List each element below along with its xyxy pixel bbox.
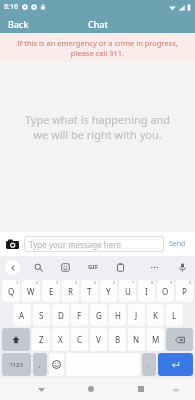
button[interactable]: Back [32, 380, 50, 398]
staticText: E [49, 286, 54, 297]
button[interactable]: . [142, 353, 156, 376]
staticText: R [68, 286, 73, 297]
button[interactable]: Backspace [166, 328, 193, 351]
button[interactable]: A [13, 304, 31, 326]
button[interactable]: GIF [85, 260, 101, 274]
staticText: Chat [88, 18, 108, 30]
button[interactable]: D [52, 304, 69, 326]
button[interactable]: More options [147, 260, 162, 275]
button[interactable]: S [33, 304, 50, 326]
button[interactable]: Stickers [58, 260, 73, 275]
staticText: 5 [94, 280, 97, 285]
button[interactable]: Z [32, 328, 50, 351]
button[interactable]: Recents [132, 380, 150, 398]
staticText: Q [8, 286, 15, 297]
staticText: 7 [132, 280, 135, 285]
staticText: GIF [88, 263, 98, 271]
button[interactable]: P [176, 280, 193, 302]
staticText: 6 [113, 280, 116, 285]
button[interactable]: ?123 [2, 353, 31, 376]
button[interactable]: Search [31, 260, 46, 275]
button[interactable]: Collapse [5, 260, 20, 275]
button[interactable]: Take photo [4, 236, 21, 253]
staticText: S [39, 310, 44, 321]
staticText: Back [8, 18, 29, 30]
button[interactable]: I [138, 280, 155, 302]
button[interactable]: W [22, 280, 40, 302]
button[interactable]: G [90, 304, 107, 326]
button[interactable]: E [42, 280, 60, 302]
staticText: X [58, 334, 63, 345]
button[interactable]: Y [100, 280, 117, 302]
button[interactable]: B [109, 328, 126, 351]
button[interactable]: J [128, 304, 145, 326]
staticText: Type what is happening and we will be ri… [22, 112, 173, 142]
staticText: 0 [189, 280, 192, 285]
button[interactable]: L [166, 304, 183, 326]
button[interactable]: F [71, 304, 88, 326]
button[interactable]: H [109, 304, 126, 326]
staticText: D [58, 310, 64, 321]
staticText: 4 [75, 280, 78, 285]
staticText: Send [169, 239, 186, 249]
staticText: If this is an emergency or a crime in pr… [9, 38, 186, 58]
staticText: T [87, 286, 92, 297]
staticText: 1 [16, 280, 19, 285]
staticText: , [39, 360, 41, 370]
staticText: O [162, 286, 169, 297]
button[interactable]: Send [164, 235, 191, 253]
staticText: N [133, 334, 140, 345]
button[interactable]: K [147, 304, 164, 326]
button[interactable]: Type your message here [24, 236, 164, 252]
button[interactable]: Home [82, 380, 100, 398]
staticText: A [19, 310, 25, 321]
staticText: 8:16 [4, 2, 18, 12]
staticText: W [27, 286, 35, 297]
staticText: M [152, 334, 160, 345]
staticText: K [153, 310, 158, 321]
button[interactable]: T [81, 280, 98, 302]
button[interactable]: Enter [158, 353, 193, 376]
staticText: C [77, 334, 83, 345]
button[interactable]: C [71, 328, 88, 351]
staticText: F [77, 310, 82, 321]
staticText: ?123 [10, 361, 23, 369]
staticText: Type your message here [29, 239, 121, 250]
staticText: I [145, 286, 148, 297]
staticText: J [135, 310, 138, 321]
staticText: V [96, 334, 101, 345]
button[interactable]: X [52, 328, 69, 351]
staticText: 9 [170, 280, 173, 285]
staticText: 3 [56, 280, 59, 285]
button[interactable]: O [157, 280, 174, 302]
staticText: P [182, 286, 187, 297]
staticText: B [115, 334, 121, 345]
button[interactable]: Clipboard [113, 260, 128, 275]
button[interactable]: Hide keyboard [169, 383, 182, 396]
staticText: L [172, 310, 177, 321]
button[interactable]: V [90, 328, 107, 351]
staticText: Z [39, 334, 44, 345]
staticText: 2 [36, 280, 39, 285]
staticText: G [96, 310, 102, 321]
staticText: 8 [151, 280, 154, 285]
button[interactable]: , [33, 353, 47, 376]
staticText: Y [106, 286, 111, 297]
button[interactable]: Emoji [49, 353, 64, 376]
button[interactable]: Q [2, 280, 20, 302]
staticText: H [115, 310, 121, 321]
staticText: . [148, 360, 150, 370]
button[interactable]: N [128, 328, 145, 351]
button[interactable]: R [62, 280, 79, 302]
button[interactable]: Shift [2, 328, 30, 351]
button[interactable]: U [119, 280, 136, 302]
button[interactable]: Back [0, 15, 37, 33]
button[interactable]: Voice input [175, 260, 190, 275]
button[interactable]: M [147, 328, 164, 351]
staticText: U [125, 286, 131, 297]
